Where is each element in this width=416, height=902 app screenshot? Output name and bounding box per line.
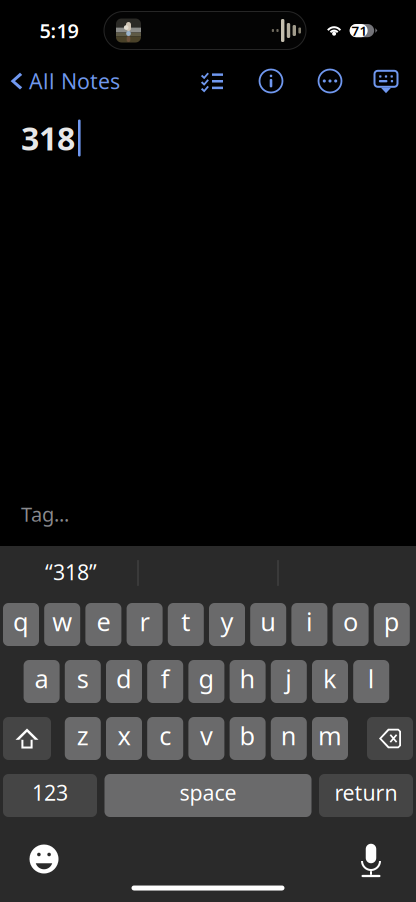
staticText: “318” <box>45 558 97 586</box>
staticText: i <box>306 605 313 638</box>
staticText: w <box>52 605 72 638</box>
button[interactable]: v <box>188 717 224 760</box>
button[interactable]: q <box>3 603 39 646</box>
button[interactable]: t <box>168 603 204 646</box>
button[interactable]: i <box>291 603 327 646</box>
button[interactable]: l <box>353 660 389 703</box>
button[interactable]: u <box>250 603 286 646</box>
staticText: z <box>77 719 89 752</box>
staticText: 71 <box>351 22 367 39</box>
staticText: f <box>161 662 170 695</box>
button[interactable]: o <box>333 603 369 646</box>
button[interactable]: z <box>65 717 101 760</box>
staticText: d <box>116 662 132 695</box>
button[interactable]: e <box>85 603 121 646</box>
staticText: c <box>159 719 171 752</box>
staticText: j <box>285 662 292 695</box>
button[interactable]: space <box>104 774 311 817</box>
staticText: h <box>240 662 256 695</box>
staticText: t <box>181 605 190 638</box>
button[interactable]: Dictate <box>349 837 393 881</box>
button[interactable]: Shift <box>3 717 51 760</box>
button[interactable]: f <box>147 660 183 703</box>
button[interactable]: 123 <box>3 774 97 817</box>
button[interactable]: g <box>188 660 224 703</box>
staticText: m <box>318 719 342 752</box>
staticText: b <box>240 719 256 752</box>
button[interactable]: return <box>319 774 413 817</box>
button[interactable]: n <box>271 717 307 760</box>
button[interactable]: j <box>271 660 307 703</box>
staticText: p <box>384 605 400 638</box>
button[interactable]: m <box>312 717 348 760</box>
staticText: x <box>117 719 130 752</box>
button[interactable]: h <box>230 660 266 703</box>
staticText: space <box>179 778 236 807</box>
staticText: e <box>96 605 110 638</box>
staticText: u <box>260 605 276 638</box>
button[interactable]: w <box>44 603 80 646</box>
staticText: v <box>200 719 213 752</box>
staticText: All Notes <box>29 67 120 95</box>
button[interactable]: b <box>230 717 266 760</box>
staticText: l <box>368 662 375 695</box>
button[interactable]: a <box>24 660 60 703</box>
button[interactable]: x <box>106 717 142 760</box>
staticText: a <box>35 662 49 695</box>
button[interactable]: k <box>312 660 348 703</box>
staticText: 5:19 <box>39 17 78 44</box>
staticText: n <box>281 719 297 752</box>
staticText: 123 <box>32 778 68 807</box>
button[interactable]: y <box>209 603 245 646</box>
staticText: q <box>13 605 29 638</box>
button[interactable]: d <box>106 660 142 703</box>
button[interactable]: c <box>147 717 183 760</box>
button[interactable]: s <box>65 660 101 703</box>
staticText: o <box>343 605 358 638</box>
staticText: k <box>323 662 337 695</box>
button[interactable]: All Notes <box>10 61 150 101</box>
button[interactable]: p <box>374 603 410 646</box>
staticText: return <box>334 778 397 807</box>
staticText: y <box>220 605 233 638</box>
staticText: r <box>140 605 150 638</box>
staticText: g <box>198 662 214 695</box>
button[interactable]: Note Info <box>250 60 292 102</box>
button[interactable]: Checklist <box>191 60 233 102</box>
button[interactable]: Hide Keyboard <box>365 61 407 103</box>
staticText: s <box>77 662 89 695</box>
button[interactable]: Emoji <box>22 837 66 881</box>
button[interactable]: Delete <box>367 717 413 760</box>
button[interactable]: More <box>309 60 351 102</box>
staticText: 318 <box>21 117 75 159</box>
button[interactable]: r <box>127 603 163 646</box>
staticText: Tag... <box>21 501 69 527</box>
